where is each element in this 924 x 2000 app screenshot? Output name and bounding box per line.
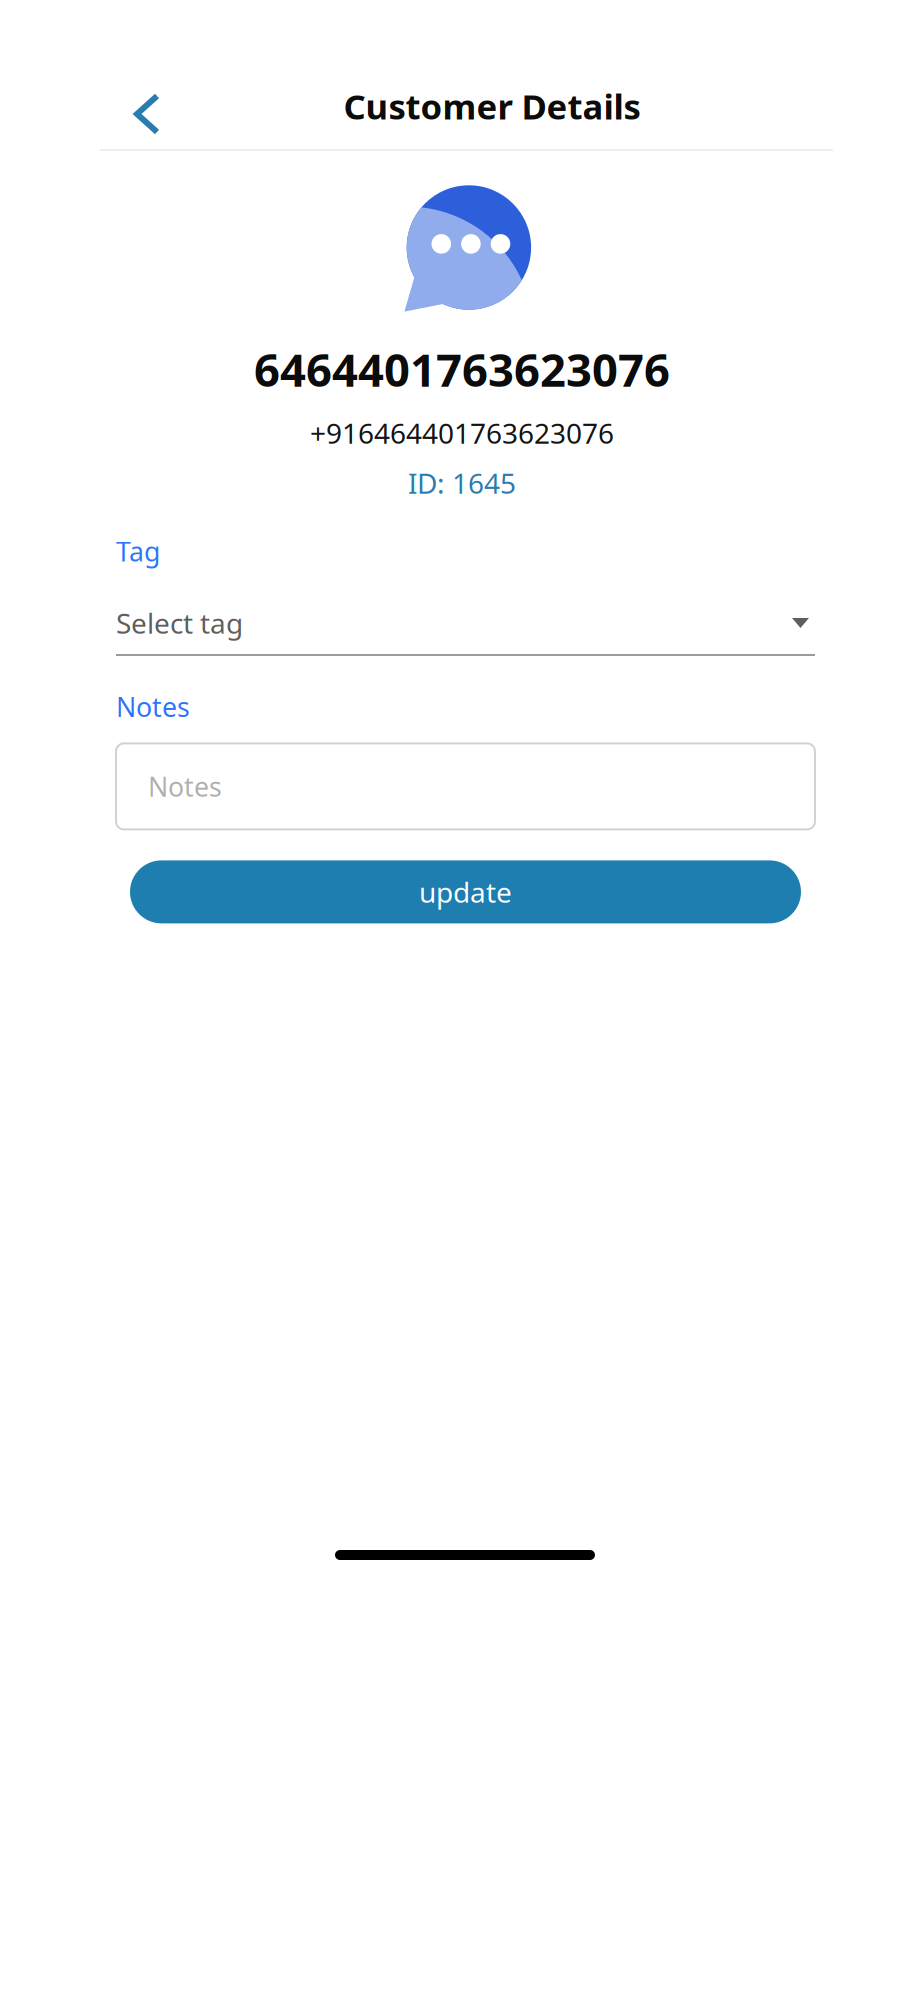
button[interactable]: Select tag: [116, 592, 815, 656]
button[interactable]: Back: [111, 76, 170, 136]
button[interactable]: Notes: [116, 743, 815, 829]
staticText: Notes: [116, 689, 190, 724]
staticText: 6464401763623076: [254, 339, 670, 399]
staticText: update: [419, 873, 512, 910]
staticText: Tag: [116, 534, 160, 569]
staticText: Select tag: [116, 604, 243, 642]
staticText: Customer Details: [343, 83, 640, 129]
staticText: Notes: [148, 769, 222, 804]
staticText: +916464401763623076: [310, 414, 614, 451]
staticText: ID: 1645: [408, 464, 516, 502]
button[interactable]: update: [130, 860, 801, 923]
